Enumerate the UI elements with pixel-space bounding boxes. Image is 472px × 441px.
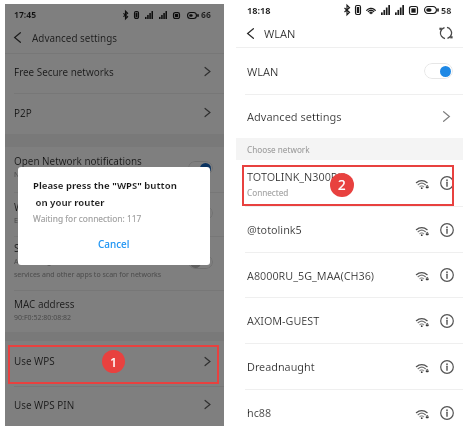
staticText: TOTOLINK_N300RH	[247, 169, 346, 184]
staticText: services and other apps to scan for netw…	[14, 270, 162, 280]
staticText: 1	[110, 353, 118, 371]
staticText: Please press the "WPS" button	[33, 179, 177, 192]
staticText: 18:18	[247, 4, 271, 17]
staticText: 66	[201, 9, 211, 21]
button[interactable]: TOTOLINK_N300RH	[236, 160, 463, 206]
button[interactable]: Toggle	[188, 161, 213, 175]
staticText: Open Network notifications	[14, 154, 142, 167]
staticText: Cancel	[98, 237, 130, 250]
button[interactable]: Use WPS PIN	[5, 387, 224, 426]
button[interactable]: WLAN	[236, 48, 463, 94]
staticText: hc88	[247, 405, 272, 420]
staticText: Scanning always available	[14, 241, 135, 254]
button[interactable]: Dreadnaught	[236, 344, 463, 389]
staticText: @totolink5	[247, 222, 302, 237]
button[interactable]: Toggle	[188, 206, 213, 220]
staticText: MAC address	[14, 297, 75, 310]
button[interactable]: Toggle	[188, 255, 213, 269]
button[interactable]: Use WPS	[5, 341, 224, 386]
button[interactable]: Free Secure networks	[5, 54, 224, 93]
button[interactable]: A8000RU_5G_MAA(CH36)	[236, 253, 463, 297]
button[interactable]: MAC address	[5, 291, 224, 332]
staticText: WLAN	[247, 64, 279, 79]
staticText: Free Secure networks	[14, 65, 114, 78]
staticText: Use WPS PIN	[14, 398, 75, 411]
staticText: Notify me when a high-quality public net…	[14, 170, 182, 180]
staticText: A8000RU_5G_MAA(CH36)	[247, 268, 375, 283]
button[interactable]: Scanning always available	[5, 237, 224, 290]
button[interactable]: hc88	[236, 390, 463, 435]
button[interactable]: Open Network notifications	[5, 147, 224, 192]
button[interactable]: @totolink5	[236, 207, 463, 252]
staticText: 90:F0:52:80:08:82	[14, 313, 72, 323]
staticText: Allow Google's location	[14, 257, 90, 267]
staticText: Use WPS	[14, 354, 55, 367]
staticText: Connected	[247, 187, 289, 198]
staticText: 17:45	[14, 9, 37, 21]
button[interactable]: Network details	[440, 360, 454, 374]
staticText: Advanced settings	[32, 31, 118, 44]
staticText: Enhance internet experience	[14, 216, 109, 226]
staticText: on your router	[33, 196, 105, 209]
button[interactable]: Refresh	[438, 25, 454, 41]
button[interactable]: Back	[244, 27, 257, 40]
button[interactable]: P2P	[5, 94, 224, 134]
button[interactable]: WLAN toggle	[424, 63, 453, 79]
button[interactable]: Advanced settings	[236, 95, 463, 138]
button[interactable]: Network details	[440, 223, 454, 237]
staticText: P2P	[14, 106, 32, 119]
button[interactable]: Network details	[440, 176, 454, 190]
staticText: Wi-Fi assistant	[14, 200, 81, 213]
staticText: Advanced settings	[247, 109, 342, 124]
staticText: Choose network	[247, 144, 310, 155]
button[interactable]: Back	[11, 31, 24, 44]
staticText: Waiting for connection: 117	[33, 213, 142, 224]
button[interactable]: Network details	[440, 314, 454, 328]
staticText: 2	[338, 176, 346, 194]
button[interactable]: Network details	[440, 268, 454, 282]
staticText: AXIOM-GUEST	[247, 313, 320, 328]
staticText: WLAN	[264, 26, 296, 41]
staticText: Dreadnaught	[247, 359, 315, 374]
button[interactable]: Wi-Fi assistant	[5, 193, 224, 236]
button[interactable]: Network details	[440, 406, 454, 420]
button[interactable]: Cancel	[86, 234, 142, 253]
button[interactable]: AXIOM-GUEST	[236, 298, 463, 343]
staticText: 58	[441, 4, 452, 16]
